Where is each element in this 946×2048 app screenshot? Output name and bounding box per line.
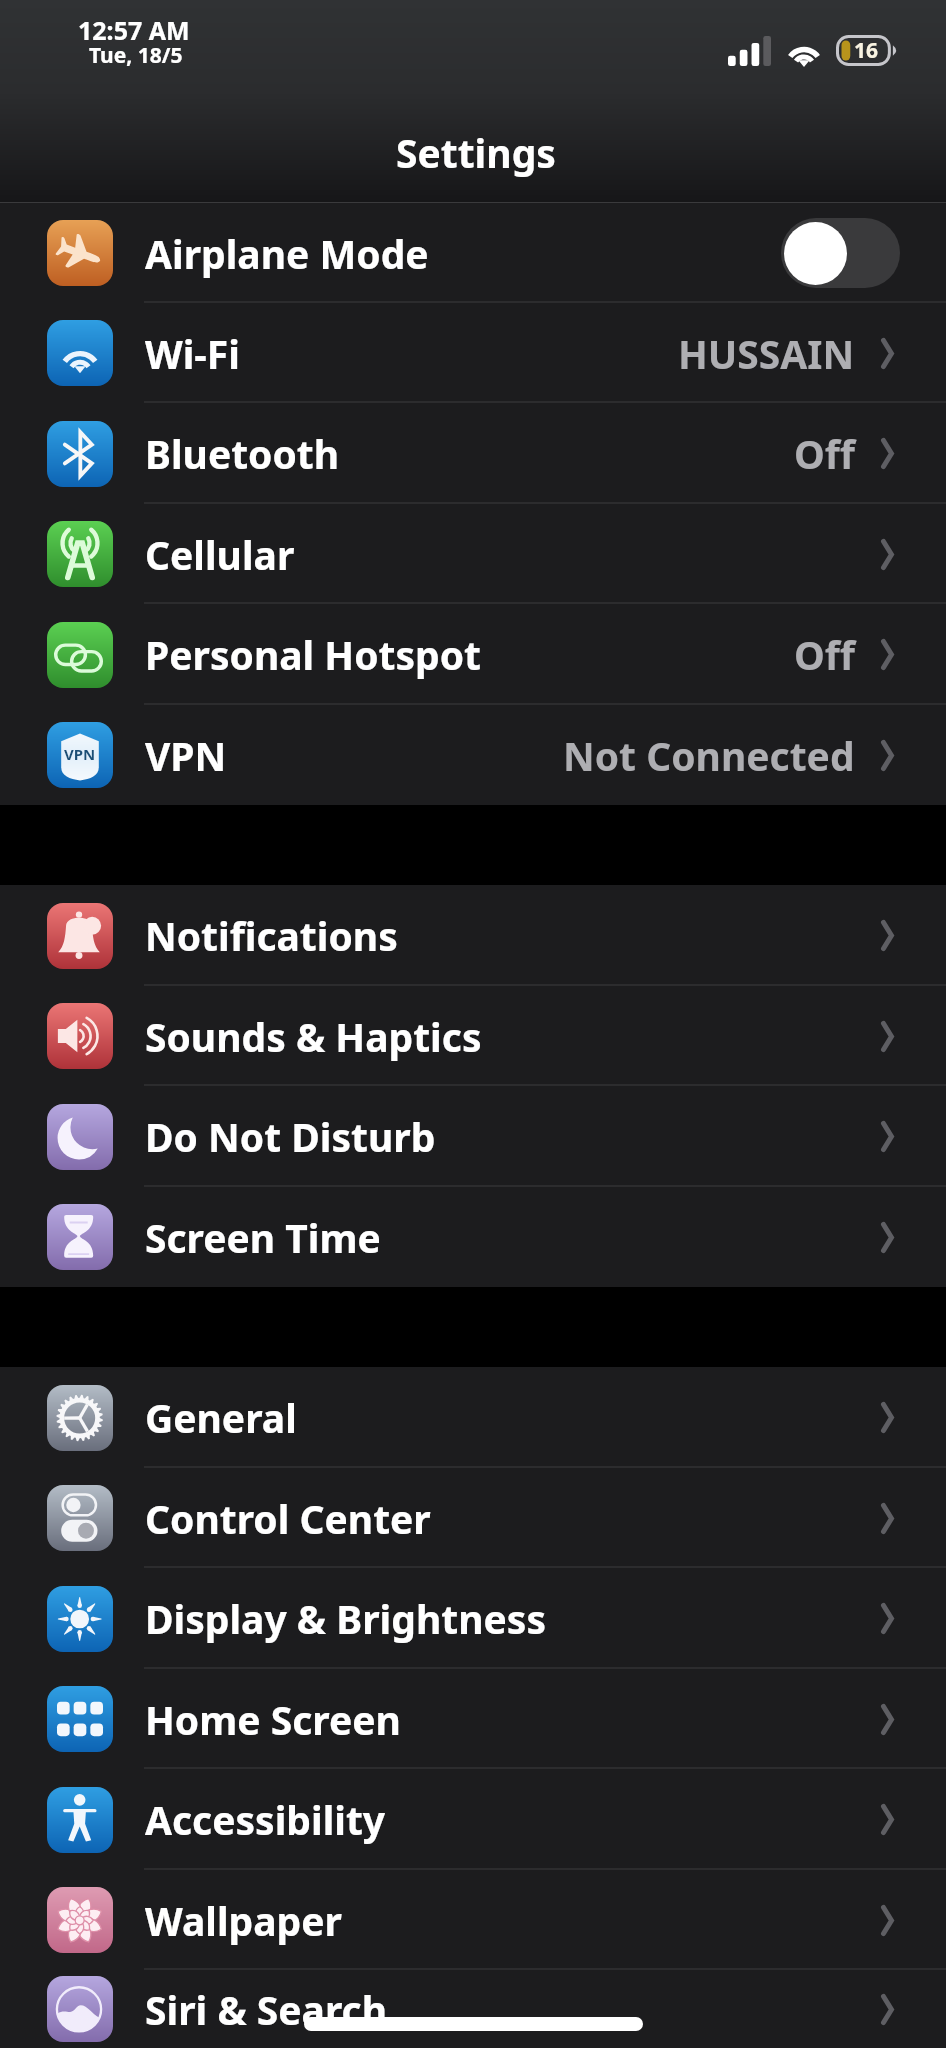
button[interactable]: Airplane Mode: [0, 203, 946, 303]
button[interactable]: Sounds & Haptics: [0, 986, 946, 1086]
button[interactable]: General: [0, 1367, 946, 1468]
staticText: Sounds & Haptics: [145, 1010, 482, 1063]
button[interactable]: Control Center: [0, 1468, 946, 1568]
staticText: Wallpaper: [145, 1894, 342, 1947]
button[interactable]: Notifications: [0, 885, 946, 986]
staticText: Do Not Disturb: [145, 1110, 436, 1163]
staticText: 16: [854, 36, 879, 65]
button[interactable]: Do Not Disturb: [0, 1086, 946, 1187]
button[interactable]: Screen Time: [0, 1187, 946, 1287]
staticText: Off: [794, 427, 855, 480]
button[interactable]: Accessibility: [0, 1769, 946, 1870]
staticText: Not Connected: [563, 729, 855, 782]
staticText: VPN: [64, 744, 96, 764]
staticText: 12:57 AM: [78, 13, 190, 47]
button[interactable]: Wi-Fi: [0, 303, 946, 403]
button[interactable]: Wallpaper: [0, 1870, 946, 1970]
button[interactable]: Airplane Mode toggle, off: [781, 218, 900, 288]
button[interactable]: Display & Brightness: [0, 1568, 946, 1669]
button[interactable]: Home Screen: [0, 1669, 946, 1769]
staticText: Accessibility: [145, 1793, 386, 1846]
staticText: VPN: [145, 729, 227, 782]
button[interactable]: Siri & Search: [0, 1970, 946, 2048]
staticText: Screen Time: [145, 1211, 381, 1264]
staticText: Notifications: [145, 909, 398, 962]
staticText: General: [145, 1391, 297, 1444]
button[interactable]: Personal Hotspot: [0, 604, 946, 705]
button[interactable]: VPN: [0, 705, 946, 805]
staticText: Display & Brightness: [145, 1592, 546, 1645]
button[interactable]: Bluetooth: [0, 403, 946, 504]
staticText: Personal Hotspot: [145, 628, 482, 681]
staticText: Settings: [396, 126, 556, 179]
button[interactable]: Cellular: [0, 504, 946, 604]
staticText: HUSSAIN: [678, 327, 855, 380]
staticText: Off: [794, 628, 855, 681]
staticText: Tue, 18/5: [89, 41, 183, 70]
staticText: Control Center: [145, 1492, 431, 1545]
staticText: Home Screen: [145, 1693, 401, 1746]
staticText: Siri & Search: [145, 1983, 388, 2036]
staticText: Bluetooth: [145, 427, 340, 480]
staticText: Wi-Fi: [145, 327, 240, 380]
staticText: Airplane Mode: [145, 227, 429, 280]
staticText: Cellular: [145, 528, 295, 581]
